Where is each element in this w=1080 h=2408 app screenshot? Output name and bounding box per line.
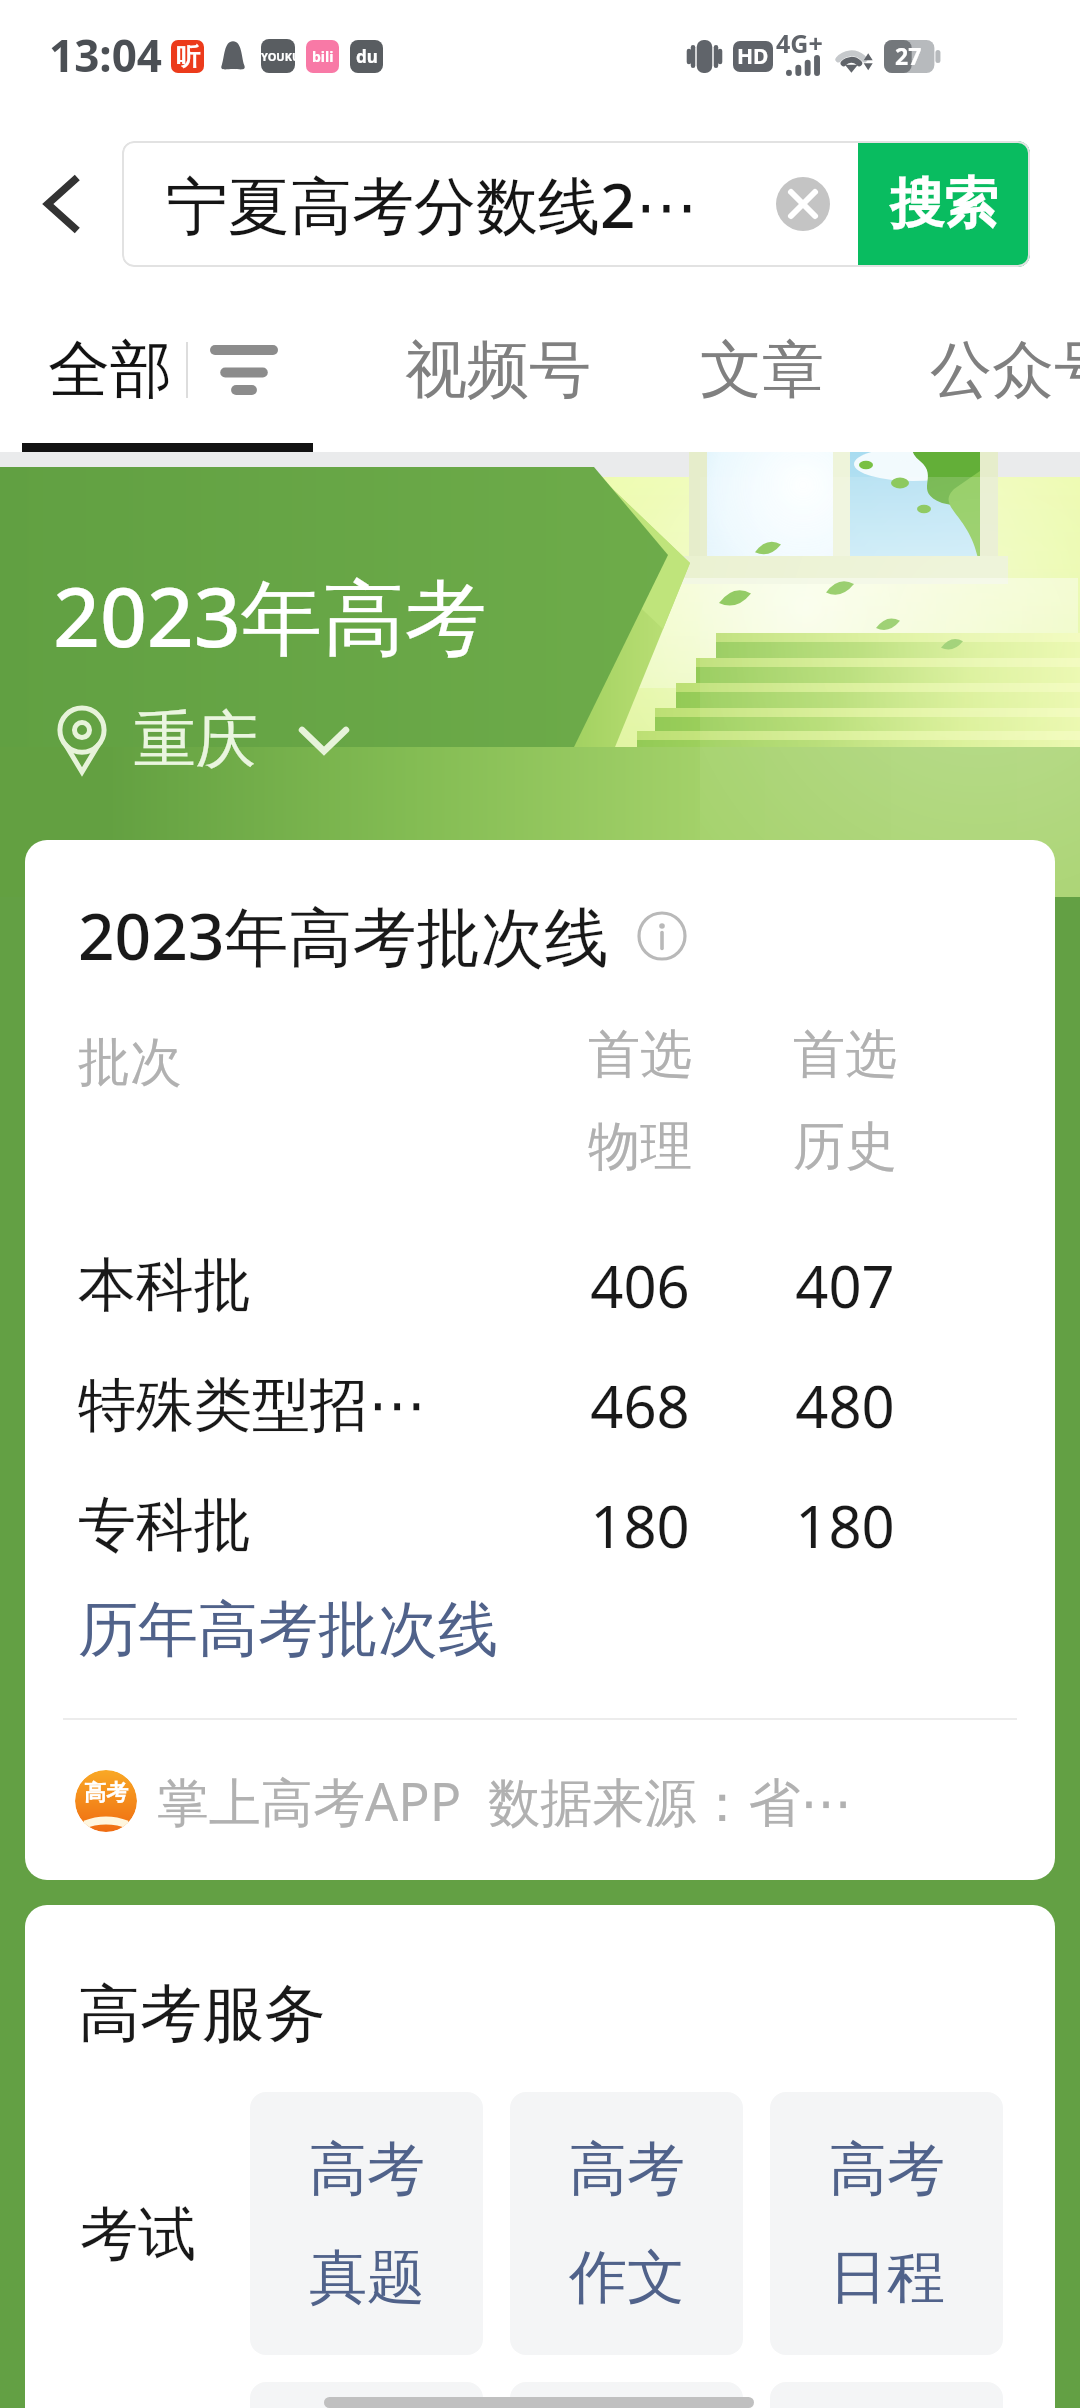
staticText: HD [737, 42, 769, 71]
staticText: 高考 日程 [829, 2133, 945, 2314]
staticText: bili [312, 47, 334, 66]
button[interactable]: 专科批 [25, 1465, 1055, 1585]
staticText: 考试 [80, 2198, 196, 2271]
button[interactable]: 重庆 [58, 701, 350, 779]
button[interactable]: 高考 作文 [510, 2092, 743, 2355]
staticText: 掌上高考APP 数据来源：省⋯ [157, 1765, 853, 1836]
staticText: 180 [745, 1486, 945, 1565]
staticText: 文章 [700, 331, 824, 409]
button[interactable]: 高考 真题 [250, 2092, 483, 2355]
staticText: 视频号 [405, 331, 591, 409]
staticText: 406 [540, 1246, 740, 1325]
staticText: YOUKU [261, 49, 295, 64]
button[interactable]: 公众号 [890, 295, 1080, 452]
staticText: 480 [745, 1366, 945, 1445]
button[interactable]: 历年高考批次线 [70, 1588, 506, 1672]
staticText: 宁夏高考分数线2⋯ [166, 162, 698, 247]
button[interactable]: Clear search text [748, 141, 858, 267]
staticText: 13:04 [49, 25, 163, 85]
staticText: 高考 真题 [309, 2133, 425, 2314]
staticText: 首选 物理 [540, 1022, 740, 1179]
staticText: 听 [176, 42, 200, 72]
staticText: 历年高考批次线 [78, 1592, 498, 1668]
button[interactable]: Back [0, 112, 122, 295]
staticText: 全部 [48, 331, 172, 409]
button[interactable]: Info [633, 907, 691, 965]
button[interactable]: 文章 [660, 295, 864, 452]
staticText: 搜索 [890, 170, 998, 238]
staticText: 批次 [78, 1030, 182, 1096]
staticText: 468 [540, 1366, 740, 1445]
staticText: 27 [895, 40, 922, 71]
staticText: 高考 作文 [569, 2133, 685, 2314]
staticText: 首选 历史 [745, 1022, 945, 1179]
staticText: 公众号 [930, 331, 1080, 409]
staticText: 本科批 [78, 1249, 252, 1322]
button[interactable]: 宁夏高考分数线2⋯ [122, 141, 748, 267]
staticText: 专科批 [78, 1489, 252, 1562]
button[interactable]: 全部 [0, 295, 315, 452]
staticText: 特殊类型招⋯ [78, 1369, 426, 1442]
staticText: 高考 [84, 1779, 128, 1807]
button[interactable]: 特殊类型招⋯ [25, 1345, 1055, 1465]
button[interactable]: 本科批 [25, 1225, 1055, 1345]
button[interactable]: 高考 日程 [770, 2092, 1003, 2355]
staticText: 高考服务 [78, 1975, 326, 2053]
staticText: 2023年高考 [53, 559, 487, 671]
staticText: 2023年高考批次线 [78, 892, 609, 979]
staticText: 重庆 [134, 701, 258, 779]
staticText: 4G+ [776, 26, 823, 60]
button[interactable]: 视频号 [365, 295, 631, 452]
staticText: 407 [745, 1246, 945, 1325]
staticText: 180 [540, 1486, 740, 1565]
button[interactable]: 搜索 [858, 141, 1030, 267]
staticText: du [356, 45, 378, 68]
